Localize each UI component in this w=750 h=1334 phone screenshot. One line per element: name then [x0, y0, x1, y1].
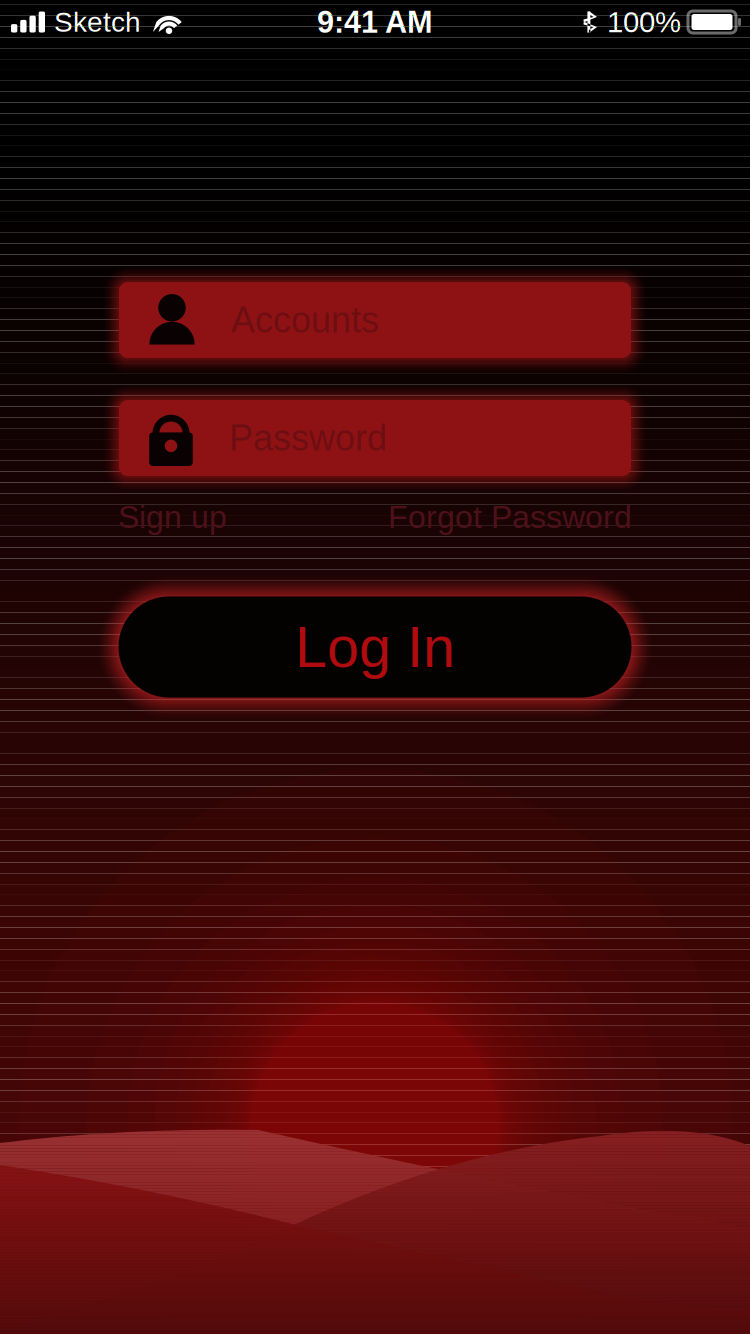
button[interactable]: Sign up — [118, 492, 632, 542]
staticText: Forgot Password — [388, 499, 632, 535]
staticText: Sign up — [118, 499, 227, 535]
staticText: 100% — [607, 6, 681, 38]
staticText: Accounts — [231, 300, 379, 340]
staticText: Sketch — [54, 6, 141, 38]
button[interactable]: Password — [95, 384, 655, 492]
staticText: 9:41 AM — [317, 5, 433, 39]
button[interactable]: Accounts — [95, 266, 655, 374]
staticText: Log In — [295, 615, 455, 679]
staticText: Password — [229, 418, 387, 458]
button[interactable]: Log In — [85, 572, 665, 722]
button[interactable]: Forgot Password — [118, 492, 632, 542]
